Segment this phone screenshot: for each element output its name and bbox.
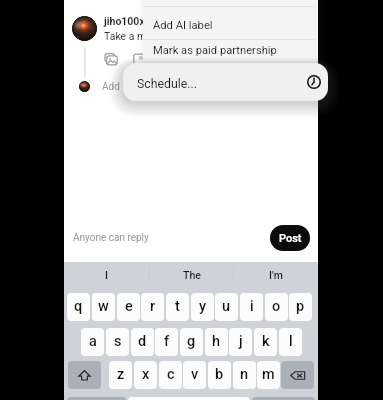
button[interactable]: n: [233, 361, 256, 389]
button[interactable]: v: [183, 361, 206, 389]
button[interactable]: Add: [102, 81, 120, 93]
button[interactable]: i: [240, 293, 263, 321]
button[interactable]: a: [81, 328, 104, 356]
button[interactable]: Symbols: [67, 397, 126, 400]
button[interactable]: Mark as paid partnership: [143, 38, 315, 63]
staticText: o: [272, 298, 281, 315]
staticText: p: [296, 298, 305, 315]
staticText: t: [175, 298, 180, 315]
staticText: l: [289, 333, 293, 350]
staticText: b: [215, 366, 224, 383]
button[interactable]: I: [64, 262, 149, 287]
button[interactable]: e: [117, 293, 140, 321]
button[interactable]: z: [109, 361, 132, 389]
button[interactable]: d: [131, 328, 154, 356]
staticText: g: [187, 333, 196, 350]
button[interactable]: s: [106, 328, 129, 356]
button[interactable]: q: [67, 293, 90, 321]
staticText: Take a m: [104, 30, 147, 42]
button[interactable]: o: [265, 293, 288, 321]
staticText: Schedule...: [137, 77, 197, 91]
button[interactable]: Shift: [68, 361, 101, 389]
button[interactable]: f: [155, 328, 178, 356]
button[interactable]: b: [208, 361, 231, 389]
staticText: u: [222, 298, 231, 315]
button[interactable]: j: [229, 328, 252, 356]
button[interactable]: t: [166, 293, 189, 321]
button[interactable]: u: [215, 293, 238, 321]
staticText: Post: [279, 232, 302, 245]
staticText: i: [250, 298, 254, 315]
staticText: Anyone can reply: [73, 232, 149, 244]
button[interactable]: The: [149, 262, 234, 287]
button[interactable]: Schedule...: [123, 63, 328, 101]
button[interactable]: x: [134, 361, 157, 389]
staticText: I'm: [269, 269, 283, 281]
button[interactable]: I'm: [233, 262, 318, 287]
button[interactable]: Post: [270, 225, 310, 251]
button[interactable]: y: [191, 293, 214, 321]
staticText: The: [183, 269, 201, 281]
staticText: r: [150, 298, 156, 315]
button[interactable]: w: [92, 293, 115, 321]
staticText: d: [138, 333, 147, 350]
staticText: a: [89, 333, 97, 350]
staticText: jiho100x: [104, 15, 145, 27]
staticText: k: [262, 333, 270, 350]
button[interactable]: Enter: [252, 397, 315, 400]
button[interactable]: k: [254, 328, 277, 356]
staticText: Add: [102, 81, 120, 93]
button[interactable]: Anyone can reply: [73, 232, 149, 244]
button[interactable]: m: [257, 361, 280, 389]
button[interactable]: Add photo: [104, 52, 119, 67]
button[interactable]: l: [279, 328, 302, 356]
button[interactable]: g: [180, 328, 203, 356]
staticText: q: [74, 298, 83, 315]
button[interactable]: Space: [128, 397, 250, 400]
button[interactable]: h: [205, 328, 228, 356]
staticText: Mark as paid partnership: [153, 44, 277, 57]
staticText: m: [262, 366, 275, 383]
staticText: x: [142, 366, 150, 383]
staticText: n: [240, 366, 249, 383]
staticText: z: [117, 366, 125, 383]
button[interactable]: Backspace: [281, 361, 314, 389]
staticText: v: [191, 366, 199, 383]
button[interactable]: r: [141, 293, 164, 321]
staticText: f: [164, 333, 170, 350]
button[interactable]: Add GIF: [132, 52, 147, 67]
staticText: I: [105, 269, 108, 281]
staticText: h: [212, 333, 221, 350]
button[interactable]: c: [159, 361, 182, 389]
button[interactable]: Add AI label: [143, 7, 315, 39]
staticText: c: [167, 366, 175, 383]
staticText: w: [98, 298, 109, 315]
staticText: e: [125, 298, 133, 315]
staticText: j: [239, 333, 243, 350]
staticText: s: [114, 333, 122, 350]
button[interactable]: p: [289, 293, 312, 321]
staticText: Add AI label: [153, 19, 213, 32]
staticText: y: [199, 298, 207, 315]
